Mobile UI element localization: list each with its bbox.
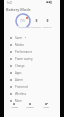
button[interactable]: Saver: [4, 34, 60, 41]
staticText: Modes: [26, 106, 34, 109]
staticText: Charge: [15, 64, 25, 68]
staticText: 9:41: [7, 1, 13, 5]
staticText: Protected: [15, 85, 28, 89]
button[interactable]: Wireless: [4, 90, 60, 97]
button[interactable]: Power saving: [4, 55, 60, 62]
staticText: ●●▌: [46, 1, 53, 4]
staticText: More: [43, 106, 49, 109]
button[interactable]: More: [4, 97, 60, 104]
other: Charging: [35, 19, 38, 22]
staticText: 7h 20m left: [18, 26, 31, 29]
staticText: More: [15, 99, 22, 103]
staticText: Usage: [11, 106, 18, 109]
staticText: Saver: [15, 36, 23, 40]
button[interactable]: Alarm: [4, 76, 60, 83]
button[interactable]: Capacity: [41, 19, 53, 29]
staticText: 72%: [20, 19, 26, 23]
button[interactable]: Performance: [4, 48, 60, 55]
button[interactable]: More: [39, 103, 53, 109]
staticText: Modes: [15, 43, 24, 47]
staticText: Charging: [31, 26, 41, 29]
button[interactable]: Usage: [7, 103, 21, 109]
staticText: Capacity: [42, 26, 52, 29]
button[interactable]: Apps: [4, 69, 60, 76]
button[interactable]: Charging: [30, 19, 42, 29]
staticText: Alarm: [15, 78, 23, 82]
staticText: Apps: [15, 71, 22, 75]
button[interactable]: Protected: [4, 83, 60, 90]
staticText: Wireless: [15, 92, 26, 96]
button[interactable]: Modes: [4, 41, 60, 48]
button[interactable]: Modes: [23, 103, 37, 109]
staticText: Performance: [15, 50, 33, 54]
staticText: Power saving: [15, 57, 33, 61]
staticText: Battery Mode: [6, 7, 31, 12]
button[interactable]: Charge: [4, 62, 60, 69]
other: Capacity: [46, 19, 49, 22]
